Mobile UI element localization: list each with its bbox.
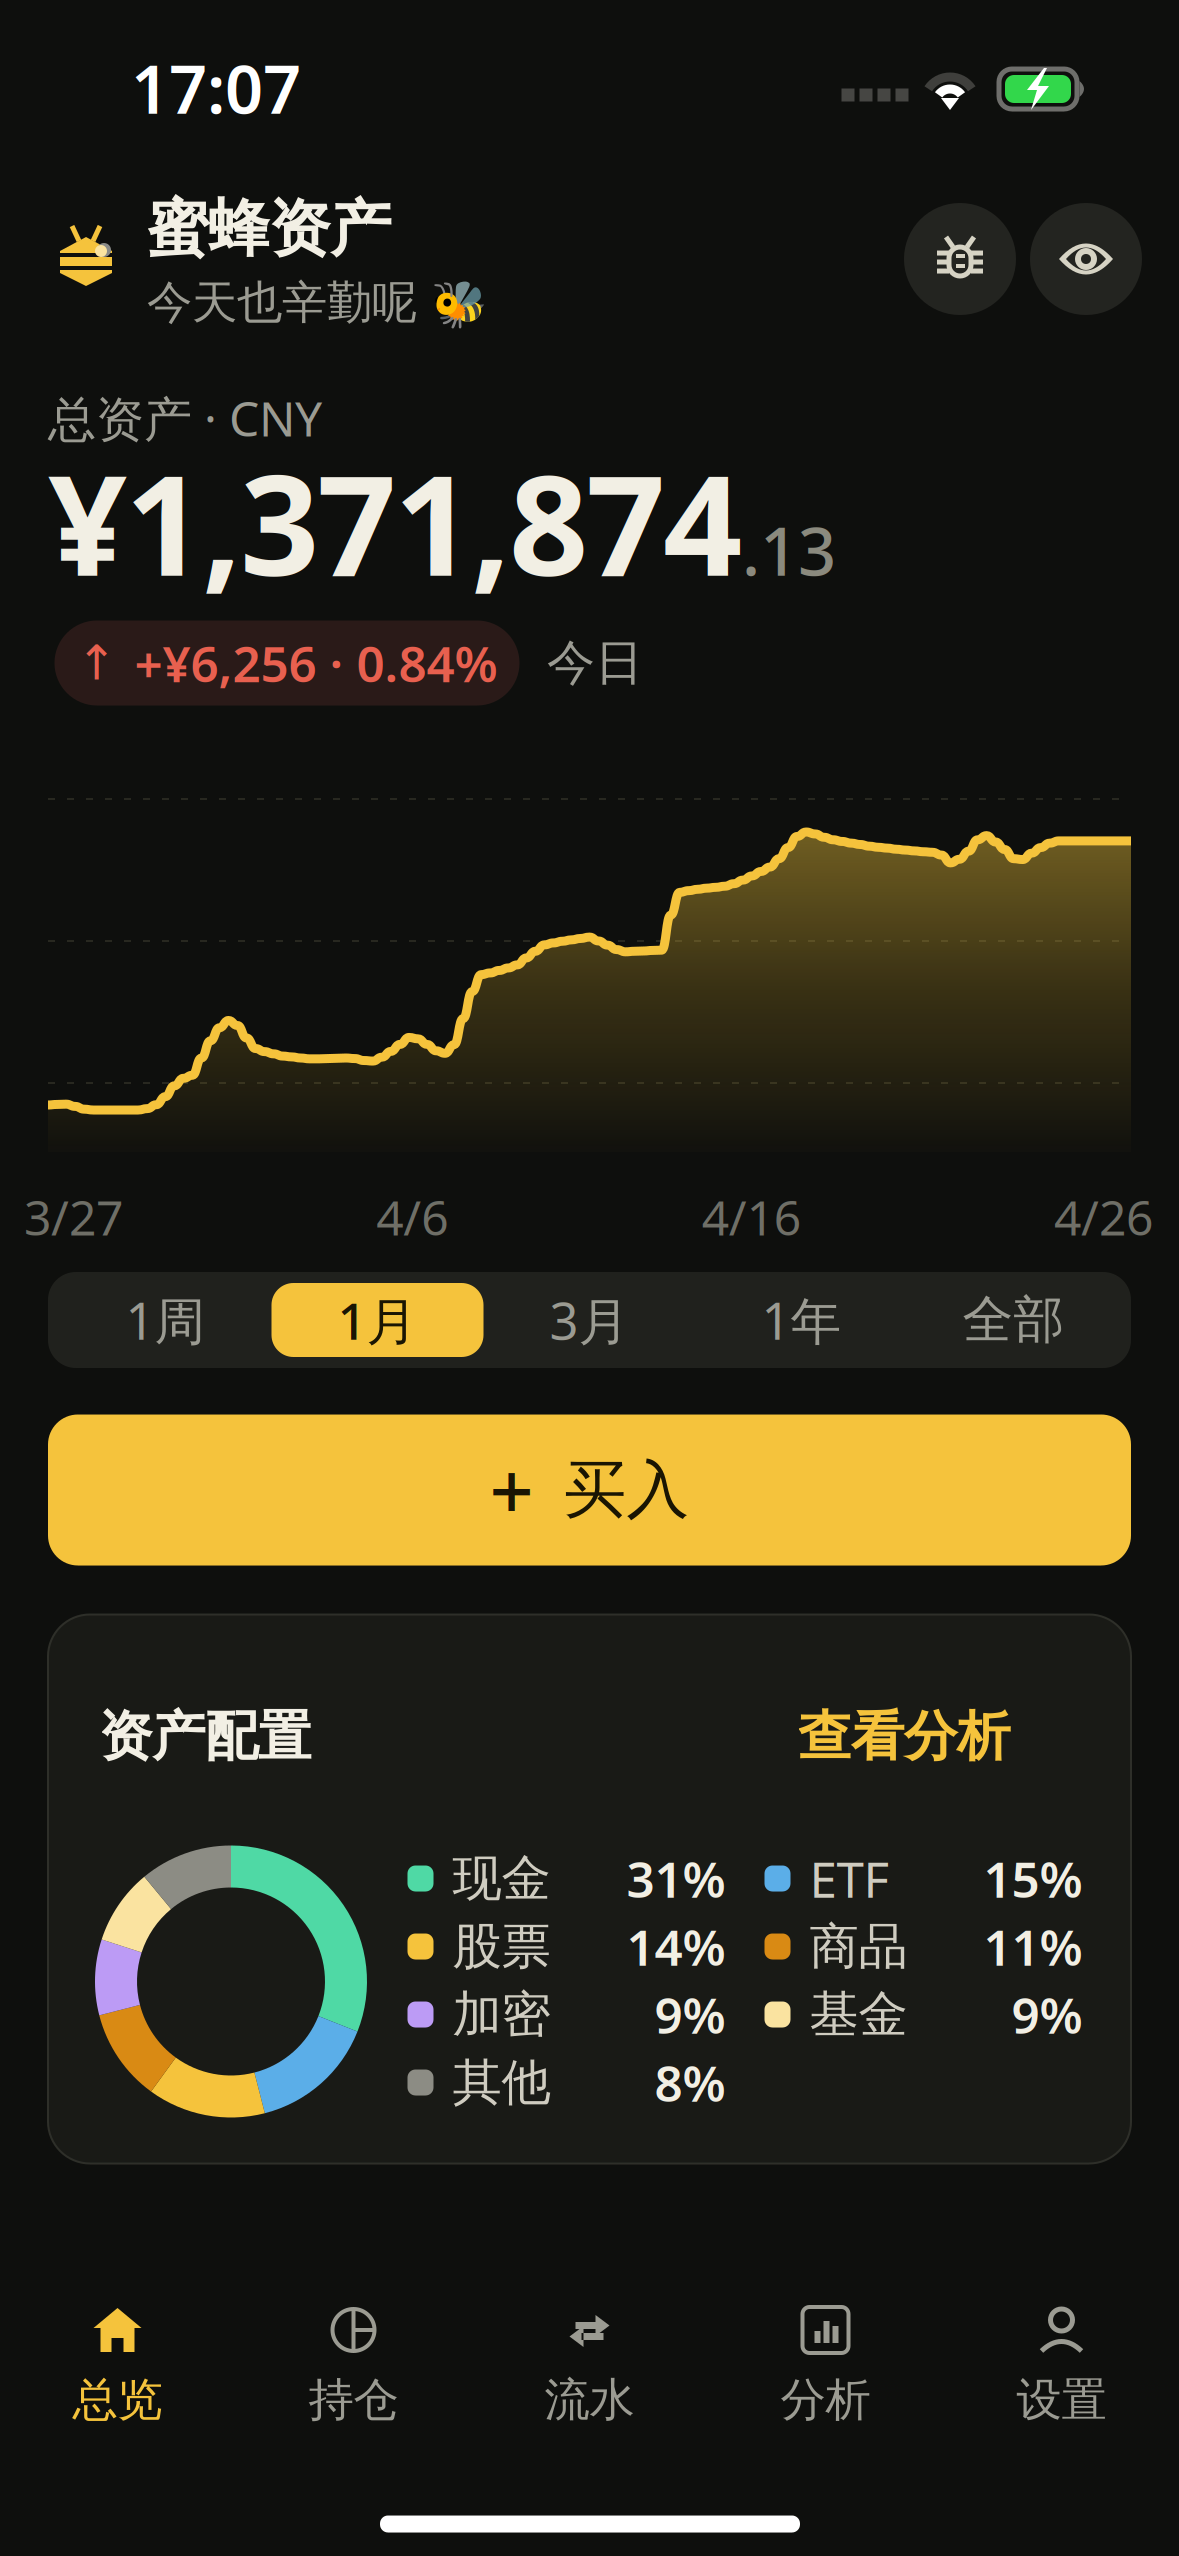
staticText: 流水 [544,2372,634,2428]
staticText: 设置 [1016,2372,1106,2428]
staticText: 持仓 [308,2372,398,2428]
staticText: 9% [1011,1982,1082,2047]
staticText: 总资产 · CNY [48,386,322,450]
staticText: 4/16 [702,1185,801,1249]
staticText: 15% [983,1846,1082,1911]
staticText: ↑ [76,636,116,690]
button[interactable]: 流水 [471,2296,707,2436]
staticText: 1周 [125,1286,205,1354]
staticText: .13 [742,506,836,594]
staticText: 现金 [452,1848,550,1909]
staticText: 蜜蜂资产 [147,191,391,267]
button[interactable]: 3月 [483,1283,695,1357]
button[interactable]: Debug [904,203,1016,315]
staticText: 基金 [809,1984,907,2045]
staticText: 3/27 [24,1185,123,1249]
staticText: ¥1,371,874 [48,430,742,614]
staticText: 总览 [72,2372,162,2428]
staticText: 今日 [547,633,643,692]
staticText: 查看分析 [798,1704,1010,1769]
staticText: 4/26 [1054,1185,1153,1249]
button[interactable]: 持仓 [235,2296,471,2436]
staticText: 1年 [761,1286,841,1354]
staticText: 全部 [962,1289,1064,1351]
staticText: 17:07 [131,44,301,132]
button[interactable]: + [48,1414,1131,1565]
staticText: 1月 [337,1286,417,1354]
staticText: 商品 [809,1916,907,1977]
button[interactable]: 查看分析 [690,1707,1010,1765]
staticText: 9% [654,1982,725,2047]
staticText: +¥6,256 · 0.84% [134,630,497,696]
button[interactable]: 设置 [943,2296,1179,2436]
staticText: 资产配置 [99,1704,311,1769]
button[interactable]: 分析 [707,2296,943,2436]
staticText: 31% [626,1846,725,1911]
staticText: 今天也辛勤呢 🐝 [147,275,487,330]
staticText: 加密 [452,1984,550,2045]
staticText: 3月 [549,1286,629,1354]
staticText: + [489,1439,533,1541]
staticText: 分析 [780,2372,870,2428]
staticText: 11% [983,1914,1082,1979]
button[interactable]: 1年 [695,1283,907,1357]
staticText: 14% [626,1914,725,1979]
staticText: 其他 [452,2052,550,2113]
staticText: ETF [809,1846,889,1911]
staticText: 8% [654,2050,725,2115]
button[interactable]: Hide balance [1030,203,1142,315]
button[interactable]: 总览 [0,2296,235,2436]
staticText: 4/6 [376,1185,448,1249]
button[interactable]: 1月 [271,1283,483,1357]
button[interactable]: 全部 [907,1283,1119,1357]
staticText: 买入 [563,1451,689,1528]
staticText: 股票 [452,1916,550,1977]
button[interactable]: 1周 [59,1283,271,1357]
